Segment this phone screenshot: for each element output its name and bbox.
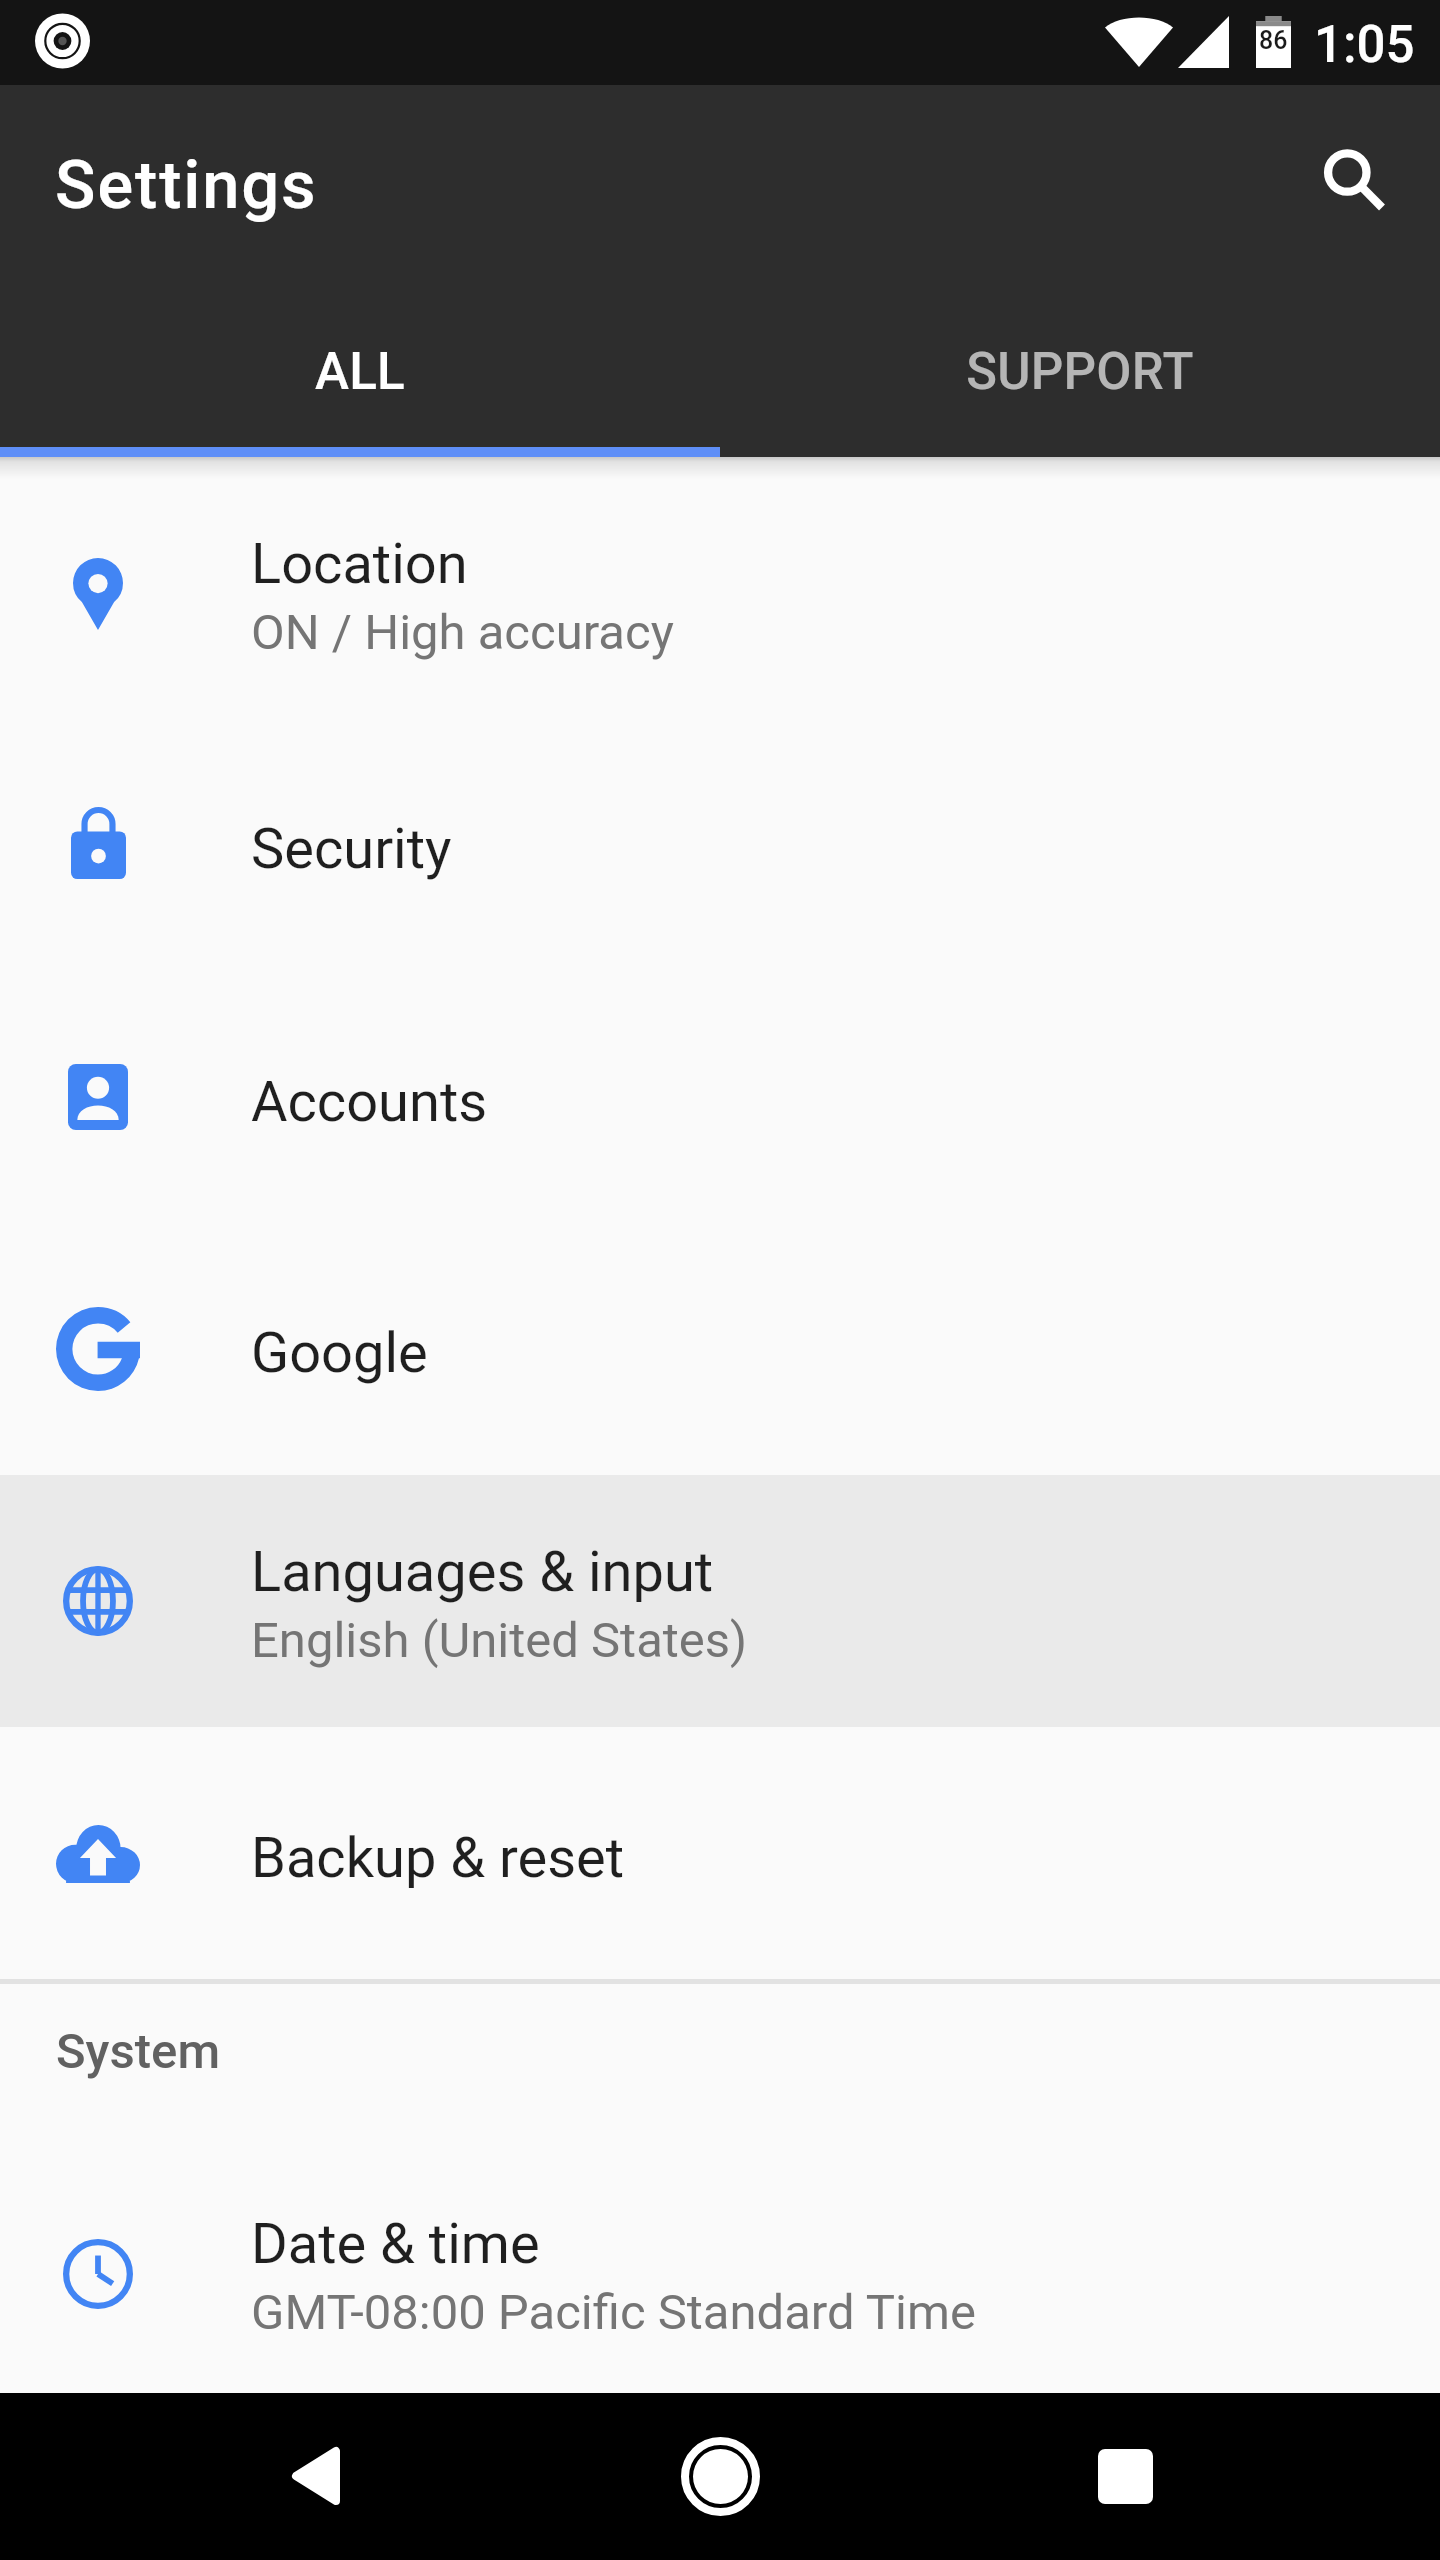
button[interactable]: Home xyxy=(640,2396,800,2556)
staticText: Backup & reset xyxy=(251,1825,625,1891)
staticText: Settings xyxy=(55,146,318,225)
button[interactable]: Backup & reset xyxy=(0,1730,1440,1982)
staticText: SUPPORT xyxy=(966,342,1194,402)
button[interactable]: ALL xyxy=(0,309,720,447)
button[interactable]: Recent apps xyxy=(1045,2396,1205,2556)
button[interactable]: Location xyxy=(0,468,1440,720)
staticText: ON / High accuracy xyxy=(251,604,674,661)
staticText: GMT-08:00 Pacific Standard Time xyxy=(251,2284,976,2341)
staticText: Date & time xyxy=(251,2211,540,2277)
staticText: ALL xyxy=(315,342,405,402)
staticText: Languages & input xyxy=(251,1539,714,1605)
button[interactable]: Search xyxy=(1300,126,1394,220)
staticText: English (United States) xyxy=(251,1612,748,1669)
button[interactable]: Back xyxy=(235,2396,395,2556)
staticText: Google xyxy=(251,1320,428,1386)
staticText: Security xyxy=(251,816,452,882)
button[interactable]: Languages & input xyxy=(0,1475,1440,1727)
button[interactable]: Security xyxy=(0,721,1440,973)
button[interactable]: Google xyxy=(0,1225,1440,1477)
button[interactable]: SUPPORT xyxy=(720,309,1440,447)
staticText: Accounts xyxy=(251,1069,488,1135)
staticText: System xyxy=(56,2023,221,2080)
button[interactable]: Accounts xyxy=(0,974,1440,1226)
staticText: 1:05 xyxy=(1314,15,1415,75)
staticText: 86 xyxy=(1259,26,1288,55)
button[interactable]: Date & time xyxy=(0,2148,1440,2400)
staticText: Location xyxy=(251,531,468,597)
